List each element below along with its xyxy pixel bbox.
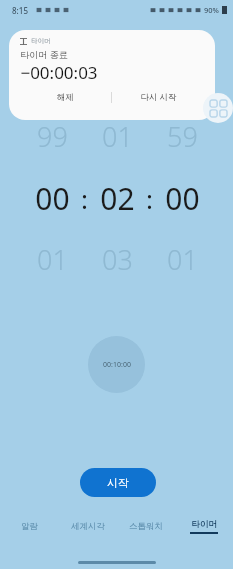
staticText: −00:00:03 bbox=[20, 61, 98, 84]
staticText: : bbox=[146, 181, 153, 216]
staticText: 스톱워치 bbox=[129, 521, 163, 532]
staticText: : bbox=[81, 181, 88, 216]
staticText: 해제 bbox=[57, 92, 74, 103]
button[interactable]: 다시 시작 bbox=[112, 88, 204, 106]
staticText: 00 bbox=[165, 178, 200, 219]
button[interactable]: 타이머 bbox=[175, 509, 233, 543]
staticText: 타이머 bbox=[191, 519, 217, 530]
staticText: 01 bbox=[102, 118, 133, 155]
staticText: 02 bbox=[100, 178, 135, 219]
button[interactable]: 타이머 bbox=[9, 30, 215, 120]
staticText: 8:15 bbox=[12, 5, 28, 16]
staticText: 59 bbox=[167, 118, 198, 155]
staticText: 00 bbox=[35, 178, 70, 219]
button[interactable]: 00:10:00 bbox=[88, 336, 145, 393]
button[interactable]: 스톱워치 bbox=[117, 509, 175, 543]
staticText: 01 bbox=[37, 241, 68, 278]
staticText: 99 bbox=[37, 118, 68, 155]
staticText: 세계시각 bbox=[71, 521, 105, 532]
staticText: 타이머 종료 bbox=[20, 48, 68, 60]
staticText: 알람 bbox=[21, 521, 38, 532]
staticText: 01 bbox=[167, 241, 198, 278]
button[interactable]: 앱 목록 bbox=[203, 93, 233, 123]
staticText: 03 bbox=[102, 241, 133, 278]
staticText: 90% bbox=[204, 5, 219, 15]
staticText: 다시 시작 bbox=[140, 91, 177, 103]
button[interactable]: 세계시각 bbox=[59, 509, 117, 543]
button[interactable]: 해제 bbox=[20, 88, 111, 106]
staticText: 시작 bbox=[107, 476, 129, 490]
button[interactable]: 시작 bbox=[80, 468, 156, 497]
button[interactable]: 알람 bbox=[0, 509, 59, 543]
staticText: 타이머 bbox=[31, 37, 51, 45]
staticText: 00:10:00 bbox=[103, 360, 131, 370]
